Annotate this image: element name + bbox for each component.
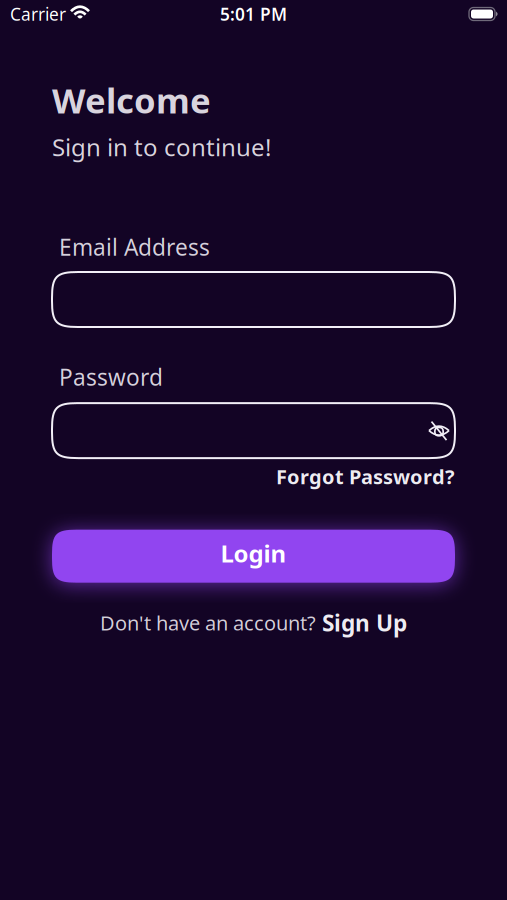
button[interactable]: Don't have an account?	[100, 608, 407, 638]
staticText: Email Address	[59, 232, 210, 262]
button[interactable]: Login	[0, 530, 507, 583]
button[interactable]: Show password	[427, 419, 451, 443]
staticText: Password	[59, 362, 163, 392]
staticText: Login	[220, 537, 286, 569]
staticText: Don't have an account?	[100, 609, 316, 636]
staticText: Sign Up	[322, 608, 407, 638]
button[interactable]: Email Address	[0, 272, 507, 327]
staticText: Forgot Password?	[276, 463, 455, 490]
staticText: 5:01 PM	[220, 2, 287, 25]
button[interactable]: Password	[0, 403, 507, 458]
staticText: Welcome	[52, 77, 211, 123]
button[interactable]: Forgot Password?	[276, 463, 455, 490]
staticText: Sign in to continue!	[52, 131, 271, 163]
staticText: Carrier	[10, 2, 66, 25]
